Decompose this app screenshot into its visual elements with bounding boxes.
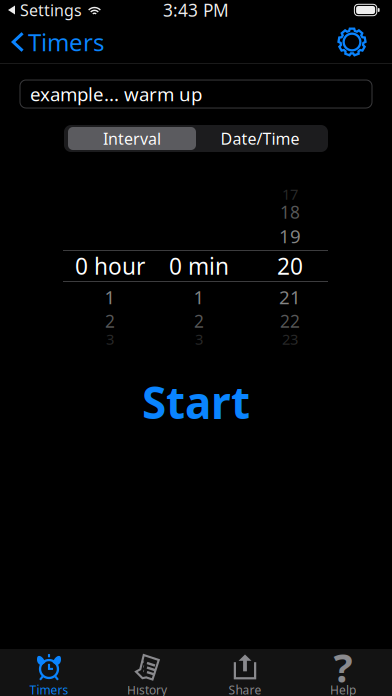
button[interactable]: Start [106,375,286,429]
button[interactable]: Timers [0,20,120,64]
button[interactable]: Share [196,649,294,696]
staticText: Start [142,373,250,431]
button[interactable]: ? [294,649,392,696]
staticText: 2 [194,309,204,332]
staticText: 2 [105,309,115,332]
staticText: ? [333,640,352,693]
staticText: 3 [195,329,203,349]
button[interactable]: Settings [330,20,374,64]
staticText: Timers [29,682,68,696]
staticText: Interval [103,128,161,149]
staticText: Share [228,682,261,696]
staticText: 0 min [169,251,229,281]
staticText: 17 [282,184,298,204]
staticText: Settings [20,0,82,21]
staticText: 0 hour [75,251,145,281]
staticText: 1 [104,285,115,309]
staticText: Help [330,682,356,696]
staticText: 1 [193,285,204,309]
button[interactable]: Date/Time [196,127,324,150]
staticText: 21 [279,285,301,309]
button[interactable]: Timers [0,649,98,696]
staticText: example... warm up [30,82,202,106]
button[interactable]: History [98,649,196,696]
staticText: 19 [279,224,301,248]
staticText: 23 [282,329,298,349]
staticText: Timers [28,26,104,58]
staticText: 20 [277,251,303,281]
staticText: 18 [280,200,300,223]
staticText: 3:43 PM [163,0,229,21]
button[interactable]: example... warm up [20,80,372,108]
staticText: 22 [280,309,300,332]
staticText: History [127,682,167,696]
button[interactable]: Interval [68,127,196,150]
staticText: Date/Time [220,128,299,149]
staticText: 3 [106,329,114,349]
